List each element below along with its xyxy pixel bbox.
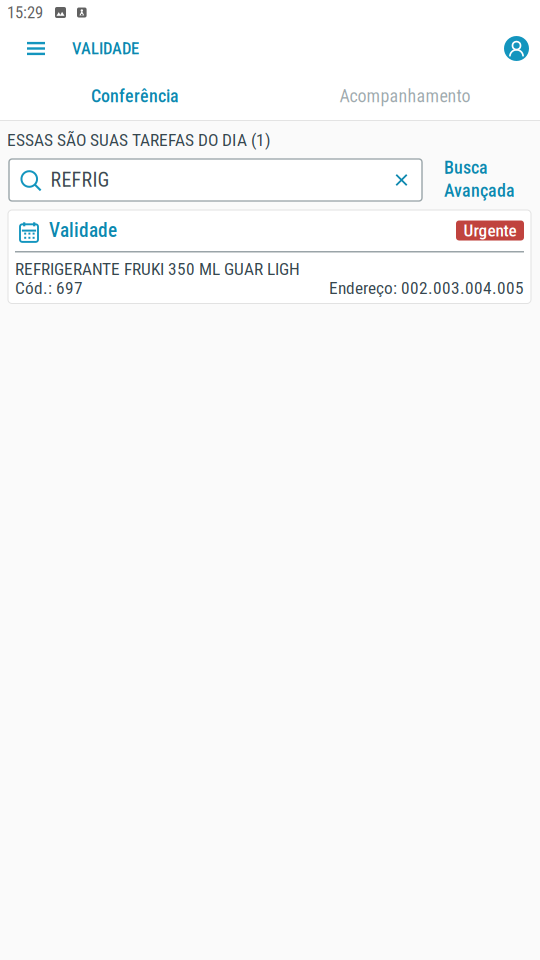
staticText: Endereço: 002.003.004.005 [329, 278, 524, 298]
staticText: REFRIGERANTE FRUKI 350 ML GUAR LIGH [15, 259, 300, 279]
button[interactable]: Conta [504, 25, 540, 72]
button[interactable]: Conferência [0, 72, 270, 120]
staticText: Urgente [463, 220, 516, 241]
staticText: Avançada [444, 180, 515, 201]
staticText: Conferência [91, 85, 179, 107]
button[interactable]: Menu [0, 25, 72, 72]
button[interactable]: Validade [8, 210, 531, 303]
button[interactable]: Busca [422, 159, 515, 201]
staticText: Busca [444, 157, 488, 178]
button[interactable]: Acompanhamento [270, 72, 540, 120]
staticText: Validade [49, 219, 117, 242]
staticText: VALIDADE [72, 39, 139, 58]
staticText: Cód.: 697 [15, 278, 83, 298]
staticText: ESSAS SÃO SUAS TAREFAS DO DIA (1) [7, 130, 271, 150]
staticText: 15:29 [7, 3, 43, 22]
staticText: REFRIG [50, 168, 109, 192]
staticText: Acompanhamento [339, 85, 470, 107]
button[interactable]: Limpar busca [381, 160, 422, 200]
